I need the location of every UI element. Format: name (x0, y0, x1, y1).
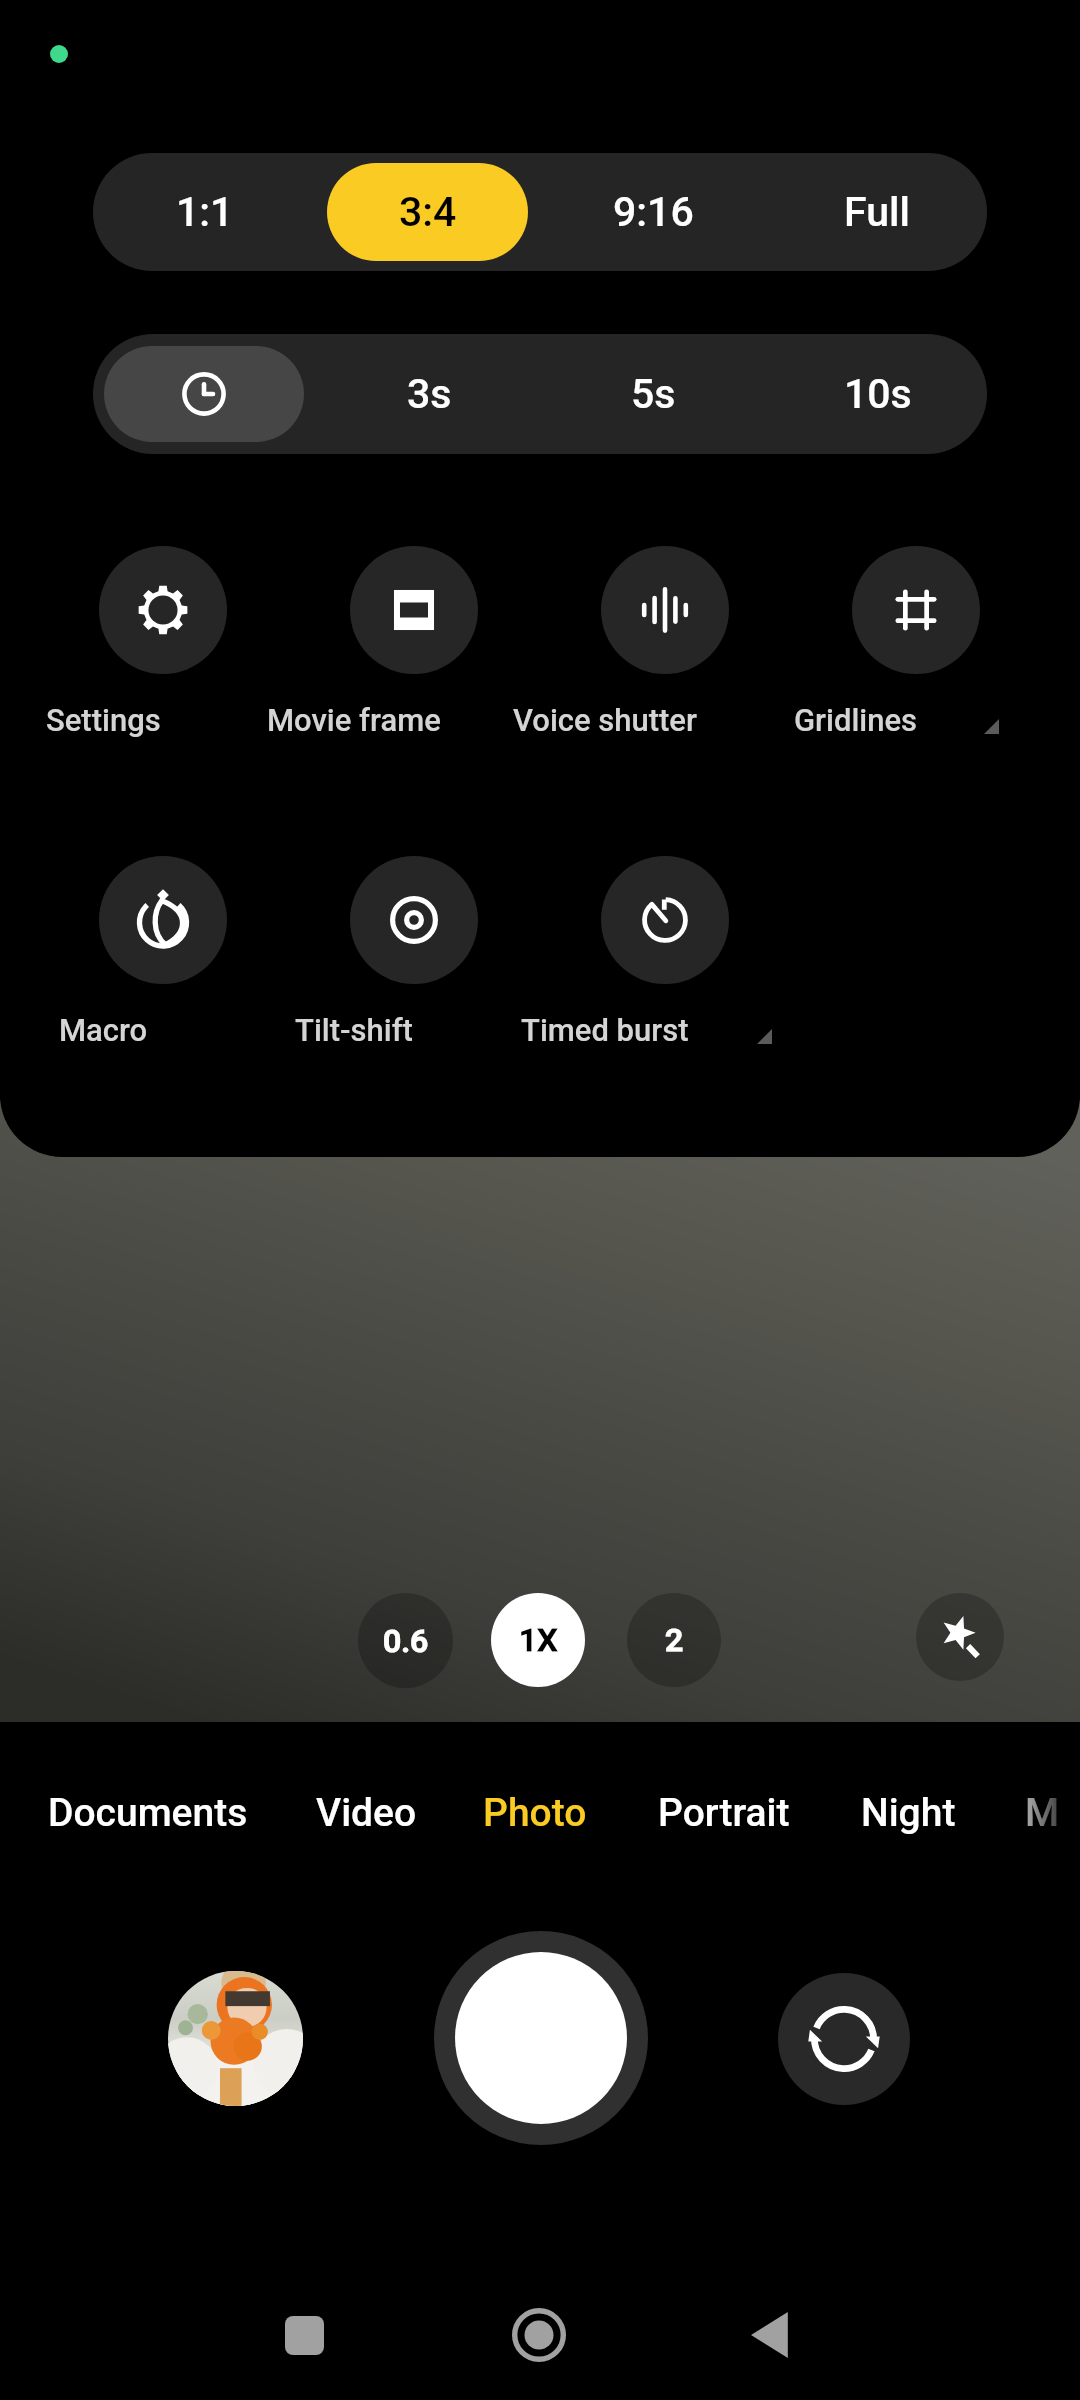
staticText: 5s (631, 370, 676, 418)
staticText: 10s (844, 370, 912, 418)
staticText: 3:4 (399, 188, 457, 236)
button[interactable]: Tilt-shift (304, 856, 524, 1056)
button[interactable]: Switch camera (778, 1973, 910, 2105)
button[interactable]: Take photo (434, 1931, 648, 2145)
staticText: Gridlines (794, 702, 918, 738)
button[interactable]: Timed burst (555, 856, 775, 1056)
button[interactable]: Back (729, 2290, 819, 2380)
button[interactable]: Night (851, 1764, 966, 1862)
button[interactable]: Video (306, 1764, 427, 1862)
button[interactable]: 3s (318, 334, 540, 454)
staticText: Settings (46, 702, 161, 738)
staticText: Documents (48, 1790, 248, 1836)
staticText: 3s (407, 370, 452, 418)
button[interactable]: 9:16 (541, 153, 765, 271)
button[interactable]: Gridlines (806, 546, 1026, 746)
staticText: Full (844, 188, 910, 236)
staticText: Tilt-shift (295, 1012, 413, 1048)
staticText: M (1025, 1790, 1060, 1836)
staticText: Voice shutter (513, 702, 697, 738)
staticText: 1X (519, 1621, 558, 1659)
button[interactable]: Portrait (648, 1764, 800, 1862)
button[interactable]: 1X (491, 1593, 585, 1687)
staticText: 1:1 (176, 188, 234, 236)
button[interactable]: Macro (53, 856, 273, 1056)
button[interactable]: 2 (627, 1593, 721, 1687)
button[interactable]: 3:4 (327, 163, 528, 261)
button[interactable]: Photo (473, 1764, 597, 1862)
button[interactable]: Movie frame (304, 546, 524, 746)
staticText: Timed burst (521, 1012, 689, 1048)
button[interactable]: Full (756, 153, 987, 271)
button[interactable]: Filters (916, 1593, 1004, 1681)
staticText: 9:16 (613, 188, 694, 236)
button[interactable]: 0.6 (358, 1593, 453, 1688)
staticText: Movie frame (267, 702, 441, 738)
button[interactable]: Home (494, 2290, 584, 2380)
button[interactable]: Voice shutter (555, 546, 775, 746)
staticText: Photo (483, 1790, 587, 1836)
staticText: 0.6 (383, 1622, 429, 1660)
button[interactable]: Gallery (168, 1971, 303, 2106)
staticText: Video (316, 1790, 417, 1836)
button[interactable]: Settings (53, 546, 273, 746)
staticText: Macro (59, 1012, 148, 1048)
button[interactable]: Timer off (104, 346, 304, 442)
button[interactable]: 5s (541, 334, 765, 454)
staticText: Portrait (658, 1790, 790, 1836)
button[interactable]: M (1015, 1764, 1070, 1862)
button[interactable]: Recents (259, 2290, 349, 2380)
staticText: Night (861, 1790, 956, 1836)
button[interactable]: 1:1 (96, 153, 314, 271)
button[interactable]: Documents (38, 1764, 258, 1862)
staticText: 2 (665, 1621, 684, 1659)
button[interactable]: 10s (765, 334, 987, 454)
